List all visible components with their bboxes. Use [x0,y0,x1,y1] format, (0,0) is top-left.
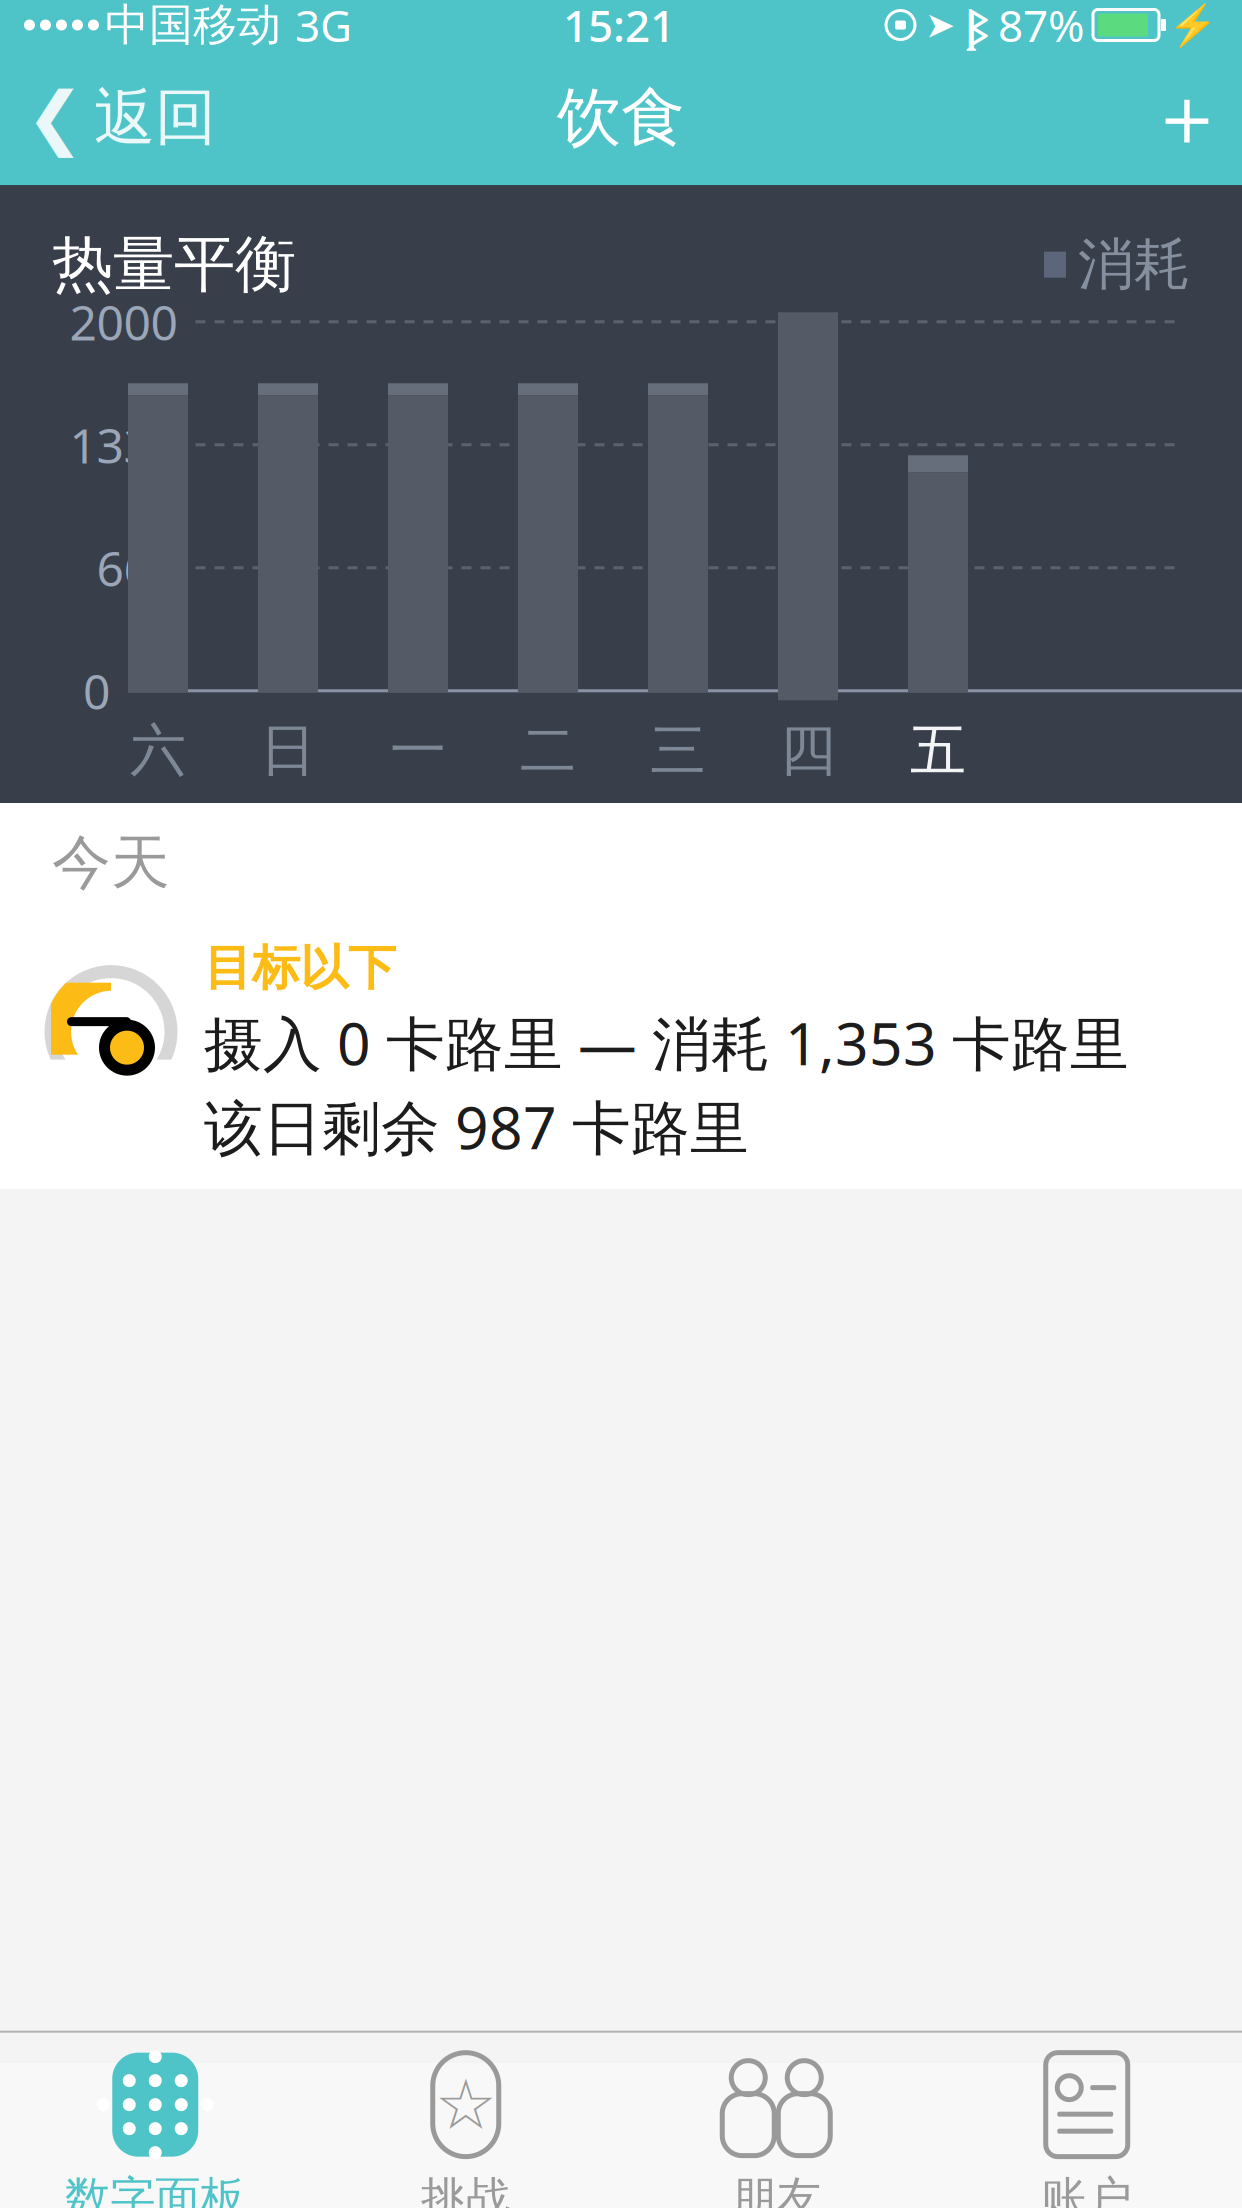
staticText: ☆ [435,2065,497,2144]
button[interactable]: 目标以下 [0,899,1242,1209]
staticText: 朋友 [731,2171,821,2208]
button[interactable]: 朋友 [621,2033,931,2208]
staticText: 三 [650,716,706,785]
staticText: ➤ [925,5,955,45]
button[interactable]: 添加 [1132,57,1242,177]
staticText: 二 [520,716,576,785]
button[interactable]: 数字面板 [0,2033,310,2208]
staticText: 目标以下 [204,939,396,998]
staticText: 1333 [69,413,177,477]
staticText: ❮ [26,78,84,157]
staticText: 日 [260,716,316,785]
staticText: 0 [83,659,110,723]
staticText: 四 [780,716,836,785]
staticText: ＋ [1145,67,1228,168]
button[interactable]: 账户 [931,2033,1242,2208]
staticText: 3G [295,0,352,54]
staticText: 热量平衡 [52,227,296,302]
staticText: 87% [998,0,1085,54]
staticText: 15:21 [563,0,675,54]
staticText: 消耗 [1078,230,1190,299]
staticText: 该日剩余 987 卡路里 [204,1087,749,1165]
staticText: 五 [910,716,966,785]
staticText: 今天 [52,827,170,899]
staticText: 饮食 [557,78,685,157]
staticText: 账户 [1042,2171,1132,2208]
staticText: 挑战 [421,2171,511,2208]
staticText: 667 [96,536,177,600]
button[interactable]: ☆ [310,2033,621,2208]
button[interactable]: ❮ [0,57,242,177]
staticText: 六 [130,716,186,785]
staticText: 中国移动 [105,0,281,52]
staticText: ⚡ [1168,2,1218,48]
staticText: 数字面板 [65,2171,245,2208]
staticText: ᛒ [965,0,988,53]
staticText: 2000 [69,290,177,354]
staticText: 一 [390,716,446,785]
staticText: 摄入 0 卡路里 — 消耗 1,353 卡路里 [204,1004,1129,1081]
staticText: 返回 [94,80,216,155]
